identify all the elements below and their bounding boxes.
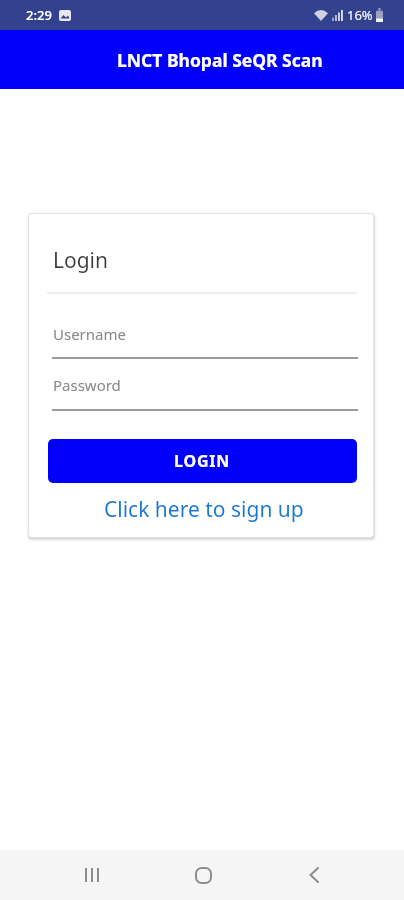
button[interactable]: LOGIN bbox=[48, 439, 357, 483]
staticText: Click here to sign up bbox=[104, 495, 304, 524]
staticText: Username bbox=[53, 324, 126, 344]
staticText: Password bbox=[53, 375, 121, 395]
staticText: Login bbox=[53, 246, 109, 274]
staticText: 2:29 bbox=[26, 6, 52, 24]
button[interactable]: Click here to sign up bbox=[28, 494, 374, 524]
staticText: LNCT Bhopal SeQR Scan bbox=[117, 48, 323, 72]
button[interactable]: Username bbox=[53, 319, 273, 349]
staticText: LOGIN bbox=[174, 450, 231, 472]
staticText: 16% bbox=[347, 6, 373, 24]
button[interactable] bbox=[68, 851, 116, 899]
button[interactable] bbox=[290, 851, 338, 899]
button[interactable]: Password bbox=[53, 370, 273, 400]
button[interactable] bbox=[179, 851, 227, 899]
